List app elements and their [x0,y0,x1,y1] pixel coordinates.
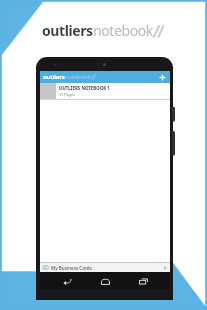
button[interactable]: Home [94,272,116,289]
staticText: 11 Pages [59,92,75,97]
staticText: outliers [42,21,93,40]
button[interactable]: OUTLIERS NOTEBOOK 1 [40,83,170,99]
button[interactable]: outliers [40,71,170,83]
staticText: OUTLIERS NOTEBOOK 1 [59,85,110,91]
button[interactable]: My Business Cards [40,263,170,272]
staticText: My Business Cards [51,265,92,271]
staticText: notebook [93,21,153,40]
button[interactable]: Back [56,272,78,289]
button[interactable]: New notebook [157,72,168,83]
staticText: outliers [43,73,65,81]
staticText: notebook [65,73,91,81]
button[interactable]: Recent apps [132,272,154,289]
